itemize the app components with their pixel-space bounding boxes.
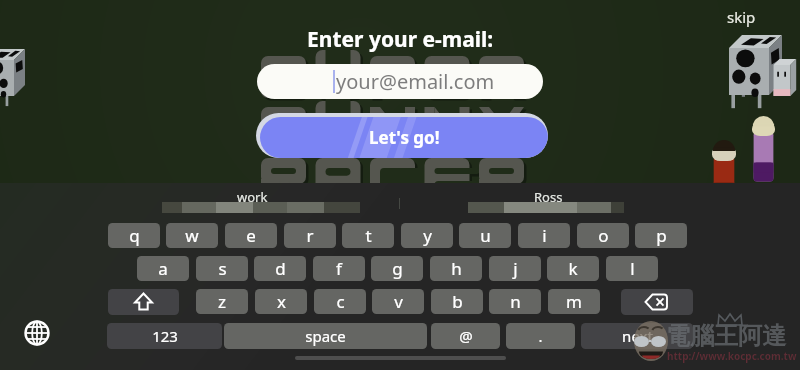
staticText: 123 bbox=[152, 326, 178, 346]
staticText: j bbox=[513, 257, 518, 280]
button[interactable]: Shift bbox=[108, 289, 179, 315]
button[interactable]: @ bbox=[431, 323, 500, 349]
button[interactable]: Ross bbox=[518, 188, 578, 206]
button[interactable]: f bbox=[313, 256, 365, 281]
staticText: l bbox=[630, 257, 635, 280]
button[interactable]: . bbox=[506, 323, 575, 349]
button[interactable]: work bbox=[222, 188, 282, 206]
staticText: t bbox=[365, 224, 372, 247]
staticText: f bbox=[336, 257, 342, 280]
button[interactable]: t bbox=[342, 223, 394, 248]
staticText: your@email.com bbox=[336, 68, 495, 95]
staticText: h bbox=[451, 257, 462, 280]
staticText: s bbox=[218, 257, 227, 280]
button[interactable]: Let's go! bbox=[256, 113, 548, 158]
button[interactable]: q bbox=[108, 223, 160, 248]
staticText: i bbox=[542, 224, 547, 247]
button[interactable]: j bbox=[489, 256, 541, 281]
staticText: c bbox=[336, 290, 345, 313]
button[interactable]: skip bbox=[721, 3, 762, 31]
button[interactable]: o bbox=[577, 223, 629, 248]
button[interactable]: z bbox=[196, 289, 248, 314]
button[interactable]: r bbox=[284, 223, 336, 248]
staticText: x bbox=[277, 290, 286, 313]
staticText: g bbox=[392, 257, 403, 280]
button[interactable]: w bbox=[166, 223, 218, 248]
button[interactable]: a bbox=[137, 256, 189, 281]
button[interactable]: x bbox=[255, 289, 307, 314]
staticText: q bbox=[129, 224, 140, 247]
button[interactable]: Change keyboard language bbox=[24, 320, 50, 346]
button[interactable]: space bbox=[224, 323, 427, 349]
button[interactable]: g bbox=[371, 256, 423, 281]
staticText: n bbox=[510, 290, 521, 313]
staticText: p bbox=[656, 224, 667, 247]
button[interactable]: b bbox=[431, 289, 483, 314]
staticText: Let's go! bbox=[369, 126, 440, 149]
button[interactable]: d bbox=[254, 256, 306, 281]
staticText: http://www.kocpc.com.tw bbox=[667, 349, 797, 363]
button[interactable]: p bbox=[635, 223, 687, 248]
staticText: d bbox=[275, 257, 286, 280]
button[interactable]: s bbox=[196, 256, 248, 281]
staticText: k bbox=[568, 257, 578, 280]
staticText: a bbox=[158, 257, 168, 280]
staticText: o bbox=[598, 224, 609, 247]
staticText: b bbox=[452, 290, 463, 313]
button[interactable]: i bbox=[518, 223, 570, 248]
staticText: e bbox=[246, 224, 256, 247]
button[interactable]: u bbox=[459, 223, 511, 248]
staticText: @ bbox=[459, 326, 473, 346]
button[interactable]: Backspace bbox=[621, 289, 693, 315]
staticText: v bbox=[394, 290, 403, 313]
staticText: m bbox=[566, 290, 582, 313]
button[interactable]: next bbox=[581, 323, 693, 349]
button[interactable]: m bbox=[548, 289, 600, 314]
staticText: w bbox=[185, 224, 199, 247]
staticText: space bbox=[305, 326, 346, 346]
staticText: z bbox=[218, 290, 226, 313]
button[interactable]: e bbox=[225, 223, 277, 248]
button[interactable]: y bbox=[401, 223, 453, 248]
staticText: . bbox=[538, 326, 543, 346]
staticText: y bbox=[423, 224, 432, 247]
staticText: u bbox=[480, 224, 491, 247]
button[interactable]: l bbox=[606, 256, 658, 281]
staticText: r bbox=[306, 224, 314, 247]
staticText: 電腦王阿達 bbox=[666, 321, 786, 351]
button[interactable]: 123 bbox=[107, 323, 222, 349]
staticText: work bbox=[237, 188, 268, 206]
button[interactable]: your@email.com bbox=[257, 64, 543, 99]
button[interactable]: c bbox=[314, 289, 366, 314]
button[interactable]: v bbox=[372, 289, 424, 314]
staticText: skip bbox=[727, 7, 756, 27]
button[interactable]: h bbox=[430, 256, 482, 281]
button[interactable]: n bbox=[489, 289, 541, 314]
staticText: Ross bbox=[534, 188, 563, 206]
button[interactable]: k bbox=[547, 256, 599, 281]
staticText: Enter your e-mail: bbox=[307, 25, 494, 54]
staticText: next bbox=[622, 326, 653, 346]
